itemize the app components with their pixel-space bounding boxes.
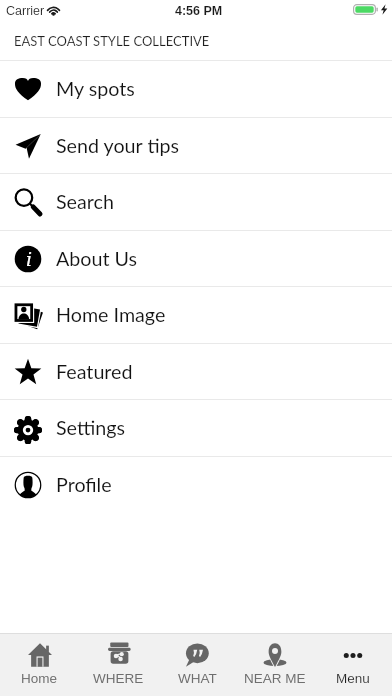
button[interactable]: Search [0,173,392,230]
other: What [185,643,209,667]
other: Where [107,643,131,667]
staticText: Menu [336,671,370,686]
button[interactable]: Featured [0,343,392,399]
button[interactable]: Menu [314,634,392,696]
staticText: Carrier [6,4,45,18]
other: Menu [341,643,365,667]
staticText: Home Image [56,303,166,327]
staticText: Settings [56,416,126,440]
staticText: WHAT [178,671,217,686]
button[interactable]: Near me [236,634,314,696]
button[interactable]: i [0,230,392,286]
button[interactable]: My spots [0,60,392,117]
button[interactable]: Send your tips [0,117,392,173]
staticText: 4:56 PM [175,4,223,18]
other: Home [28,643,52,667]
staticText: EAST COAST STYLE COLLECTIVE [14,33,210,49]
staticText: Search [56,190,114,214]
button[interactable]: What [158,634,236,696]
button[interactable]: Home Image [0,286,392,343]
staticText: Profile [56,473,112,497]
button[interactable]: Profile [0,456,392,513]
staticText: My spots [56,77,135,101]
other: Near me [263,643,287,667]
staticText: Featured [56,360,133,384]
staticText: Send your tips [56,134,180,158]
staticText: Home [21,671,58,686]
staticText: WHERE [93,671,144,686]
button[interactable]: Where [79,634,158,696]
button[interactable]: Home [0,634,79,696]
button[interactable]: Settings [0,399,392,456]
staticText: NEAR ME [244,671,306,686]
staticText: About Us [56,247,138,271]
staticText: i [26,248,33,270]
